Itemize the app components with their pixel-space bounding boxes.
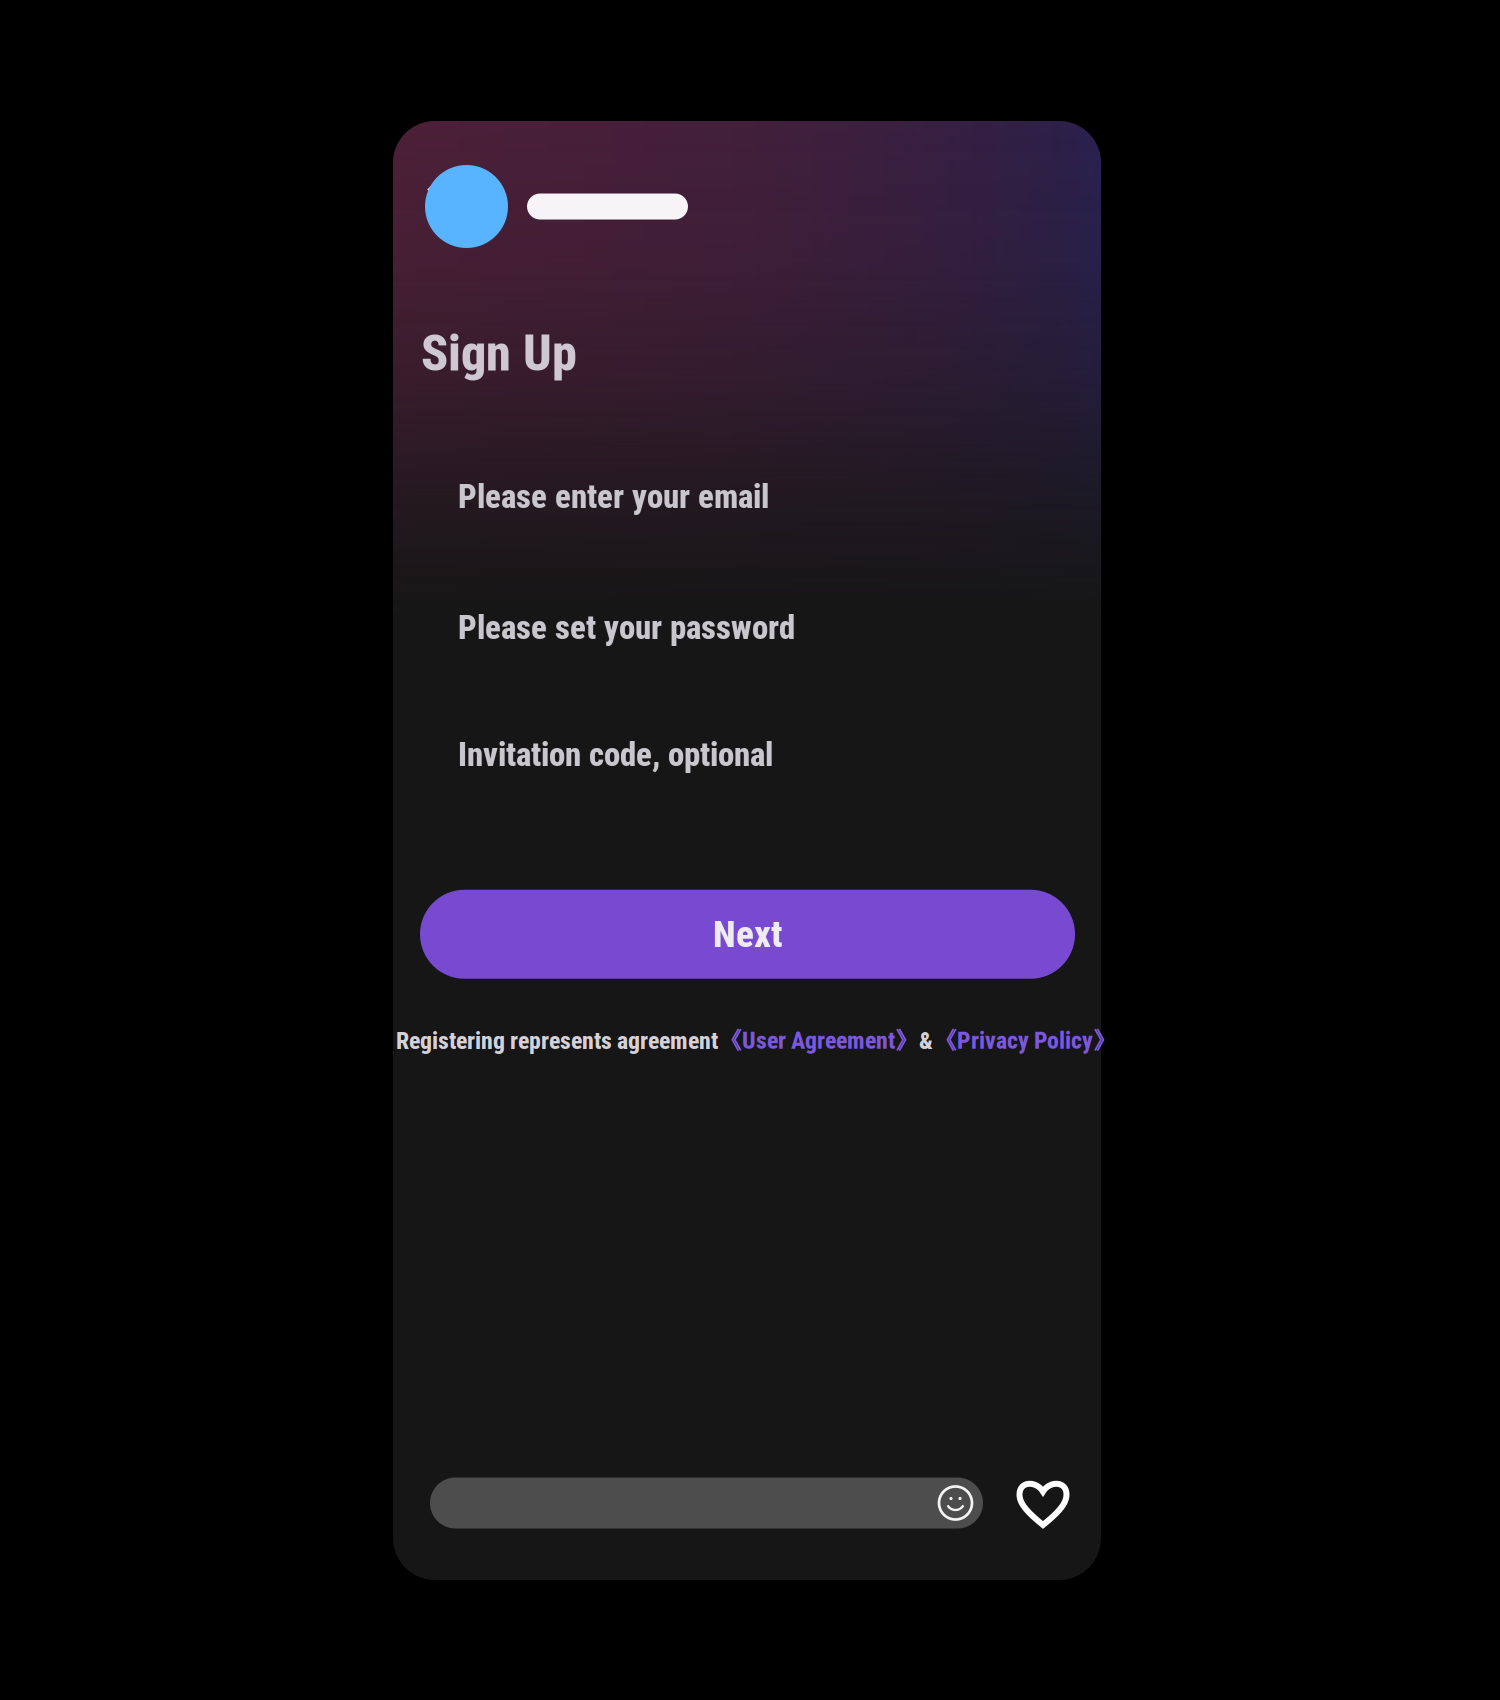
- button[interactable]: Next: [420, 890, 1075, 979]
- staticText: 《User Agreement》: [718, 1026, 919, 1056]
- button[interactable]: 《Privacy Policy》: [933, 1026, 1117, 1056]
- button[interactable]: Please set your password: [458, 605, 1041, 651]
- staticText: Next: [713, 912, 782, 956]
- button[interactable]: Invitation code, optional: [458, 732, 1041, 778]
- staticText: Please enter your email: [458, 477, 769, 516]
- button[interactable]: Like: [999, 1473, 1087, 1533]
- staticText: &: [919, 1027, 933, 1055]
- staticText: Registering represents agreement: [396, 1027, 718, 1055]
- staticText: Please set your password: [458, 608, 795, 647]
- staticText: Sign Up: [421, 324, 577, 383]
- staticText: Invitation code, optional: [458, 735, 773, 774]
- button[interactable]: 《User Agreement》: [718, 1026, 919, 1056]
- button[interactable]: Please enter your email: [458, 474, 1041, 520]
- button[interactable]: Account: [425, 165, 1069, 248]
- staticText: 《Privacy Policy》: [933, 1026, 1117, 1056]
